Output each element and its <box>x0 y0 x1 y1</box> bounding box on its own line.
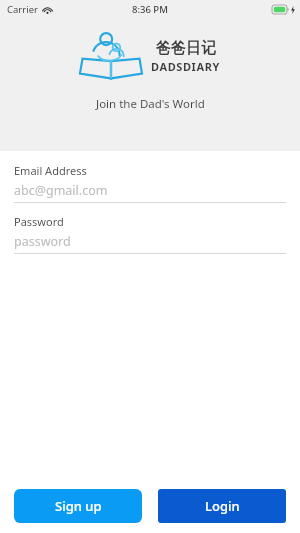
staticText: Password <box>14 214 64 229</box>
staticText: Login <box>205 497 240 515</box>
staticText: 爸爸日记 <box>156 39 216 58</box>
staticText: Join the Dad's World <box>96 96 205 112</box>
staticText: 8:36 PM <box>132 3 168 16</box>
staticText: abc@gmail.com <box>14 182 108 199</box>
staticText: Carrier <box>7 3 38 16</box>
staticText: password <box>14 233 71 250</box>
button[interactable]: Login <box>158 489 286 523</box>
button[interactable]: Email Address <box>14 163 286 203</box>
button[interactable]: Sign up <box>14 489 142 523</box>
staticText: DADSDIARY <box>151 59 221 74</box>
staticText: Email Address <box>14 163 87 178</box>
button[interactable]: Password <box>14 214 286 254</box>
staticText: Sign up <box>55 497 102 515</box>
